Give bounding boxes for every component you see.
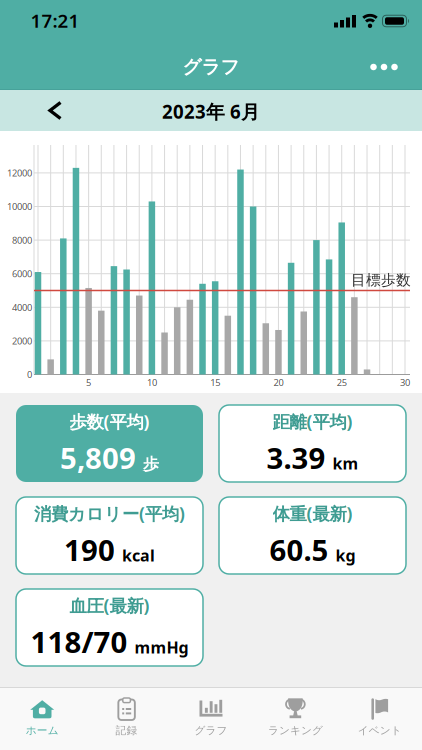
staticText: グラフ [182, 55, 239, 78]
staticText: 5,809 [60, 438, 136, 477]
staticText: 記録 [116, 724, 138, 737]
staticText: 5 [86, 376, 91, 389]
staticText: 30 [400, 376, 410, 389]
staticText: 歩数(平均) [69, 410, 149, 433]
button[interactable]: ホーム [0, 687, 84, 750]
staticText: 歩 [143, 454, 159, 474]
staticText: kcal [122, 545, 155, 566]
button[interactable]: イベント [338, 687, 422, 750]
staticText: 0 [27, 368, 32, 381]
staticText: 118/70 [30, 622, 127, 661]
staticText: 15 [210, 376, 220, 389]
staticText: 6000 [12, 267, 32, 280]
staticText: 距離(平均) [272, 410, 352, 433]
staticText: 10000 [7, 200, 32, 213]
staticText: 17:21 [30, 8, 79, 33]
staticText: km [332, 453, 358, 474]
staticText: 目標歩数 [351, 271, 411, 289]
button[interactable]: グラフ [169, 687, 253, 750]
staticText: ホーム [26, 724, 59, 737]
button[interactable]: 記録 [84, 687, 169, 750]
staticText: イベント [358, 724, 402, 737]
staticText: 2000 [12, 335, 32, 347]
staticText: 20 [273, 376, 283, 389]
button[interactable]: メニュー [362, 45, 406, 89]
staticText: mmHg [134, 637, 188, 658]
staticText: kg [335, 545, 355, 566]
staticText: グラフ [194, 724, 227, 737]
staticText: 2023年 6月 [162, 99, 260, 124]
staticText: ランキング [268, 724, 323, 737]
staticText: 3.39 [266, 438, 325, 477]
staticText: 12000 [7, 167, 32, 179]
button[interactable]: ランキング [253, 687, 338, 750]
button[interactable]: 前の月 [32, 93, 77, 128]
staticText: 25 [337, 376, 347, 389]
staticText: 10 [147, 376, 157, 389]
staticText: 60.5 [269, 530, 328, 569]
staticText: 血圧(最新) [69, 594, 149, 617]
staticText: 190 [64, 530, 115, 569]
staticText: 体重(最新) [272, 502, 352, 525]
staticText: 消費カロリー(平均) [34, 502, 185, 525]
staticText: 4000 [12, 301, 32, 313]
staticText: 8000 [12, 234, 32, 246]
